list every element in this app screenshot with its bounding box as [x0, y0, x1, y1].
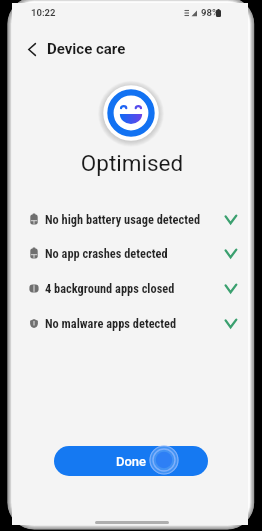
staticText: 98%: [201, 7, 219, 18]
staticText: Optimised: [14, 150, 250, 176]
button[interactable]: Navigate up: [20, 37, 44, 61]
staticText: 4 background apps closed: [45, 281, 175, 296]
button[interactable]: No malware apps detected: [12, 308, 248, 338]
button[interactable]: Done: [54, 446, 208, 476]
staticText: No app crashes detected: [45, 246, 168, 261]
staticText: 10:22: [31, 7, 56, 18]
button[interactable]: 4 background apps closed: [12, 273, 248, 303]
button[interactable]: No app crashes detected: [12, 238, 248, 268]
staticText: No malware apps detected: [45, 316, 177, 331]
staticText: Done: [116, 454, 147, 469]
button[interactable]: No high battery usage detected: [12, 204, 248, 234]
staticText: Device care: [47, 40, 126, 58]
staticText: No high battery usage detected: [45, 212, 201, 227]
